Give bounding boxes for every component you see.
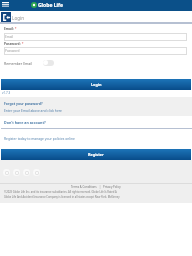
button[interactable]: Login — [1, 79, 191, 90]
staticText: Forgot your password? — [4, 101, 43, 106]
staticText: Globe Life — [38, 2, 63, 9]
staticText: Email — [5, 35, 14, 39]
staticText: Login — [12, 15, 25, 21]
staticText: Email: — [4, 26, 14, 30]
staticText: Remember Email — [4, 61, 33, 66]
button[interactable]: Twitter — [13, 169, 20, 176]
button[interactable]: Privacy Policy — [103, 185, 121, 189]
staticText: Enter your Email above and click here — [4, 108, 62, 112]
staticText: Password: — [4, 41, 21, 45]
staticText: | — [97, 185, 103, 189]
button[interactable]: Forgot your password? — [0, 97, 192, 116]
staticText: Password — [5, 49, 20, 53]
staticText: * — [21, 41, 24, 45]
button[interactable]: LinkedIn — [33, 169, 40, 176]
staticText: Register today to manage your policies o… — [4, 136, 75, 140]
button[interactable]: Password — [4, 47, 187, 55]
button[interactable]: YouTube — [23, 169, 30, 176]
button[interactable]: Remember Email — [4, 60, 54, 66]
button[interactable]: Don't have an account? — [4, 120, 46, 125]
button[interactable]: Menu — [2, 2, 9, 7]
button[interactable]: Facebook — [3, 169, 10, 176]
staticText: ©2023 Globe Life Inc. and its insurance … — [4, 190, 120, 199]
button[interactable]: Email — [4, 33, 187, 41]
button[interactable]: Register — [1, 149, 191, 160]
button[interactable]: Terms & Conditions — [71, 185, 97, 189]
staticText: v1.7.3 — [2, 91, 11, 95]
staticText: * — [14, 26, 17, 30]
staticText: Login — [91, 82, 102, 87]
staticText: Register — [88, 152, 104, 157]
button[interactable]: Login — [1, 12, 11, 22]
